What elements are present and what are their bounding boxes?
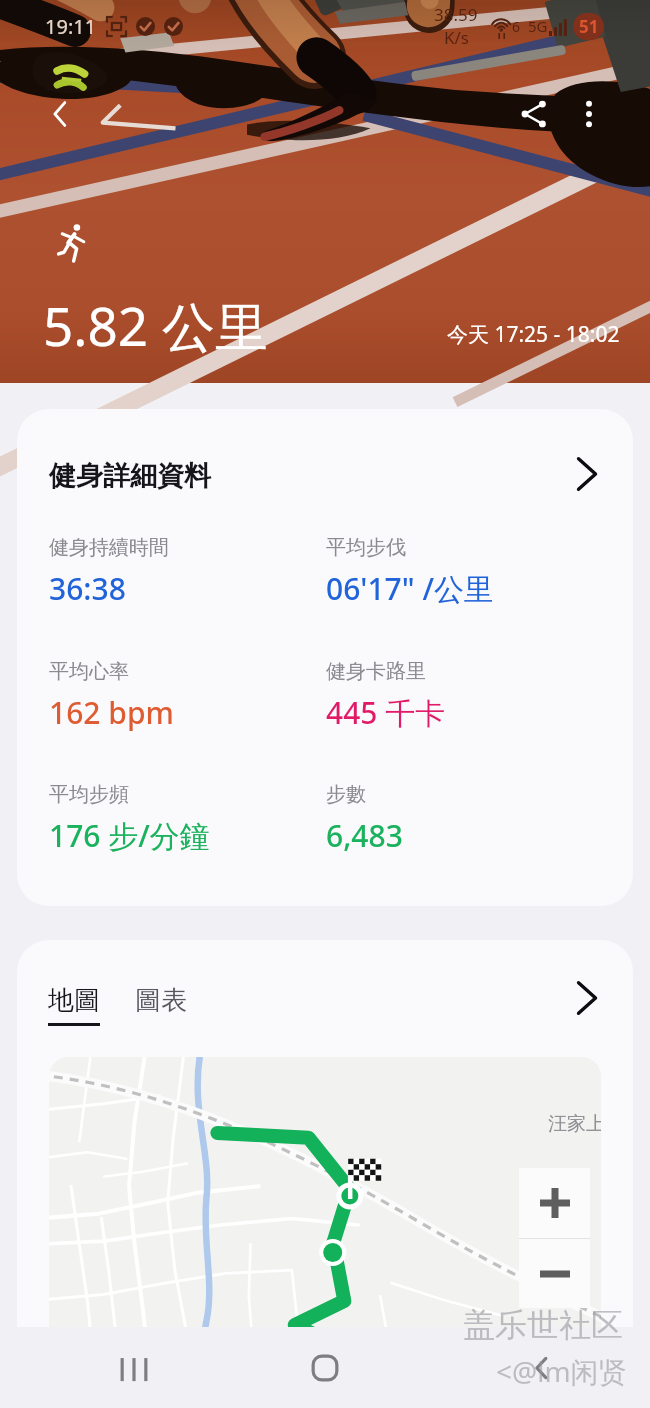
button[interactable]: 圖表 (135, 984, 187, 1017)
staticText: 圖表 (135, 984, 187, 1017)
staticText: 平均步頻 (49, 782, 129, 807)
staticText: 06'17" /公里 (326, 568, 494, 609)
button[interactable]: 地圖 (48, 984, 100, 1026)
button[interactable]: Back (433, 1327, 650, 1408)
staticText: 5G (528, 16, 548, 36)
button[interactable]: Back (34, 88, 86, 140)
staticText: 6 (512, 17, 521, 36)
staticText: 19:11 (45, 13, 97, 40)
staticText: 健身詳細資料 (49, 459, 211, 493)
staticText: 6,483 (326, 815, 403, 856)
button[interactable]: Zoom out (519, 1239, 590, 1308)
staticText: 5.82 公里 (43, 289, 268, 361)
button[interactable]: Home (216, 1327, 433, 1408)
staticText: 162 bpm (49, 692, 174, 733)
staticText: 地圖 (48, 984, 100, 1017)
staticText: <@lm闲贤 (496, 1352, 627, 1390)
button[interactable]: 汪家上 (49, 1057, 601, 1380)
button[interactable]: More options (563, 88, 615, 140)
button[interactable]: Zoom in (519, 1168, 590, 1238)
staticText: 平均心率 (49, 659, 129, 684)
staticText: 平均步伐 (326, 535, 406, 560)
staticText: 汪家上 (548, 1112, 601, 1136)
button[interactable]: Open map (561, 974, 609, 1022)
staticText: 今天 17:25 - 18:02 (447, 320, 620, 349)
staticText: 健身卡路里 (326, 659, 426, 684)
staticText: 步數 (326, 782, 366, 807)
staticText: 盖乐世社区 (463, 1305, 623, 1345)
staticText: 38.59 (434, 3, 478, 26)
staticText: 36:38 (49, 568, 126, 609)
button[interactable]: Workout details (561, 450, 609, 498)
button[interactable]: Recent apps (0, 1327, 216, 1408)
staticText: 176 步/分鐘 (49, 815, 210, 856)
button[interactable]: 健身詳細資料 (17, 409, 633, 906)
staticText: 健身持續時間 (49, 535, 169, 560)
button[interactable]: Share (508, 88, 560, 140)
staticText: K/s (444, 26, 469, 49)
staticText: 445 千卡 (326, 692, 446, 733)
staticText: 51 (579, 15, 599, 38)
